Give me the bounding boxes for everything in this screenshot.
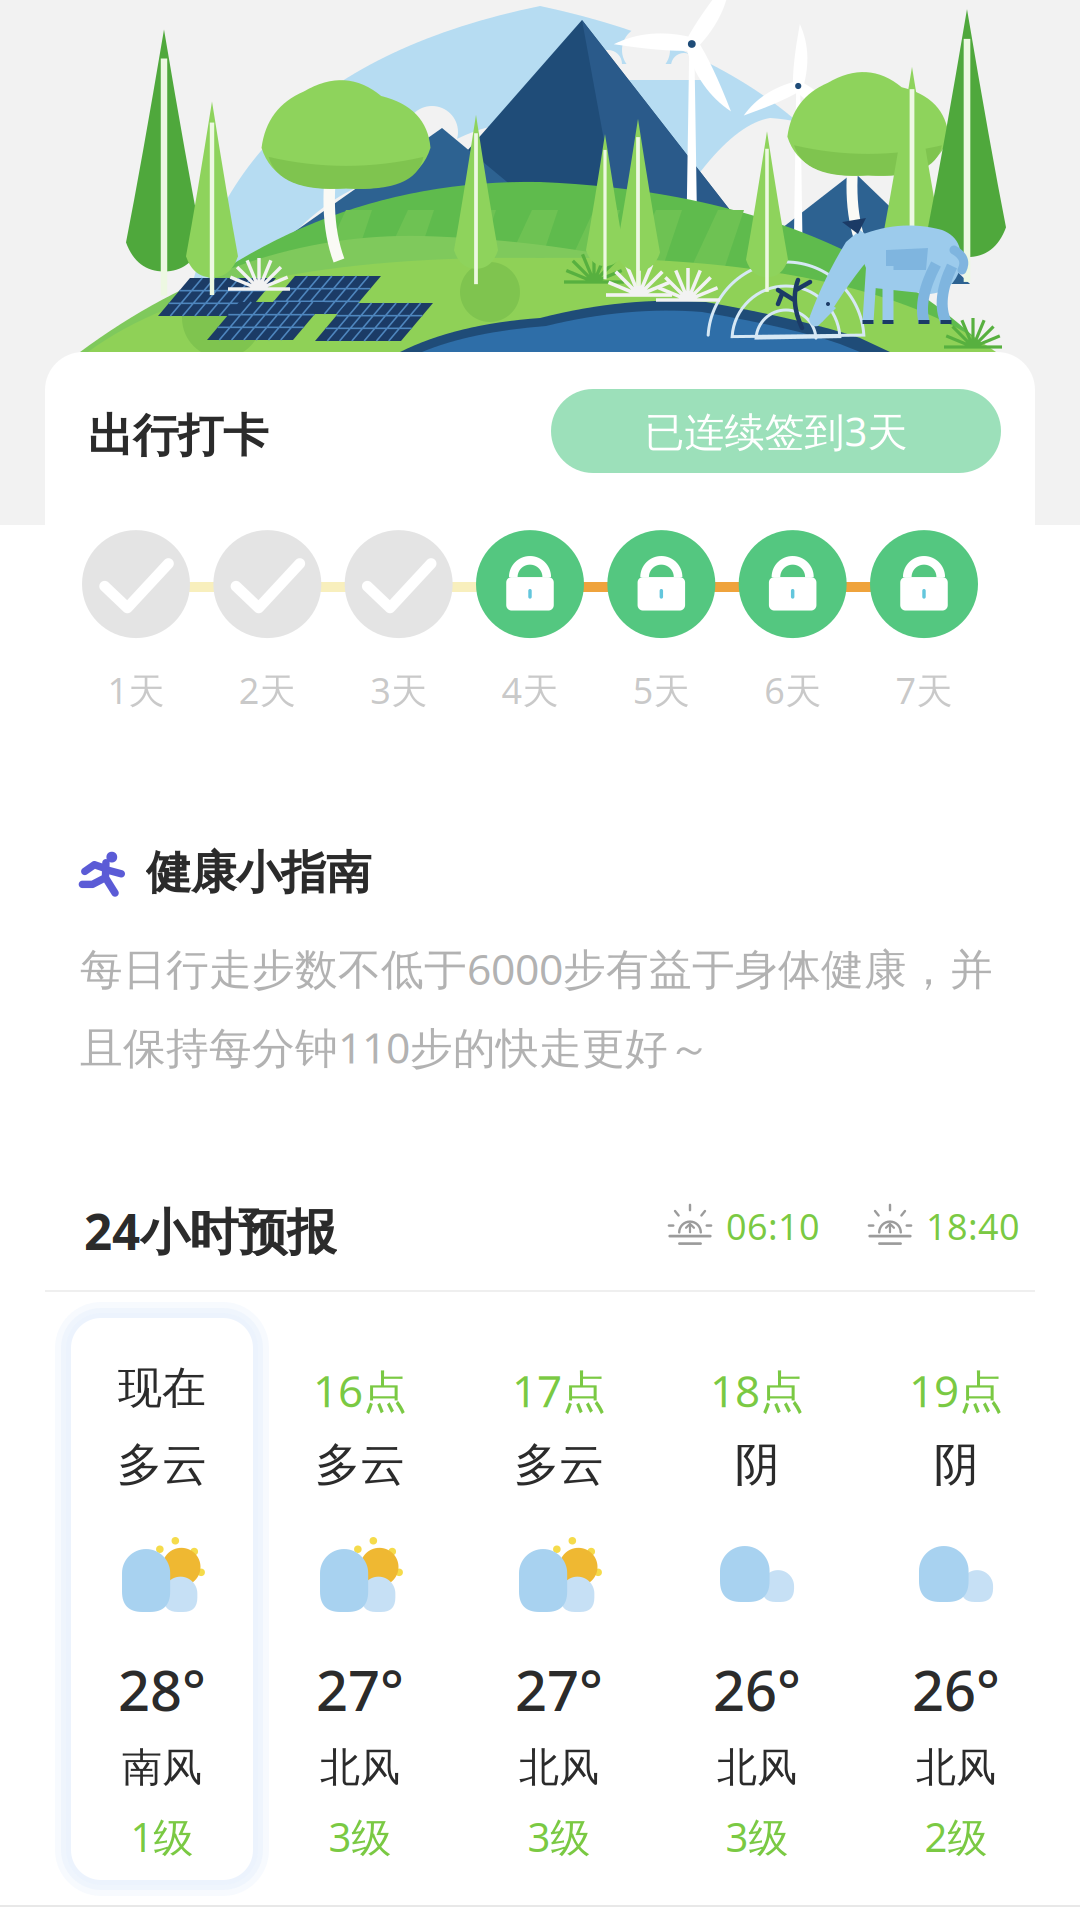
staticText: 北风 [320, 1743, 400, 1792]
staticText: 1级 [130, 1810, 193, 1863]
button[interactable]: 18点 [666, 1318, 848, 1880]
staticText: 16点 [313, 1361, 407, 1419]
staticText: 06:10 [726, 1202, 820, 1250]
staticText: 26° [713, 1652, 801, 1726]
button[interactable]: 7天 [870, 533, 978, 711]
button[interactable]: 4天 [476, 533, 584, 711]
staticText: 北风 [916, 1743, 996, 1792]
staticText: 17点 [512, 1361, 606, 1419]
staticText: 6天 [764, 666, 821, 714]
staticText: 26° [912, 1652, 1000, 1726]
staticText: 27° [316, 1652, 404, 1726]
staticText: 多云 [117, 1437, 207, 1493]
staticText: 健康小指南 [146, 845, 371, 901]
staticText: 5天 [633, 666, 690, 714]
staticText: 19点 [909, 1361, 1003, 1419]
staticText: 现在 [118, 1361, 206, 1415]
staticText: 多云 [315, 1437, 405, 1493]
staticText: 阴 [933, 1437, 978, 1493]
staticText: 阴 [734, 1437, 779, 1493]
staticText: 北风 [519, 1743, 599, 1792]
staticText: 18:40 [926, 1202, 1020, 1250]
staticText: 7天 [895, 666, 952, 714]
button[interactable]: 现在 [71, 1318, 253, 1880]
staticText: 每日行走步数不低于6000步有益于身体健康，并 [80, 940, 993, 997]
staticText: 南风 [122, 1743, 202, 1792]
staticText: 已连续签到3天 [644, 404, 907, 457]
staticText: 3天 [370, 666, 427, 714]
button[interactable]: 3天 [345, 533, 453, 711]
staticText: 4天 [501, 666, 558, 714]
button[interactable]: 已连续签到3天 [551, 389, 1001, 473]
staticText: 出行打卡 [88, 408, 268, 464]
button[interactable]: 17点 [468, 1318, 650, 1880]
staticText: 18点 [710, 1361, 804, 1419]
staticText: 2级 [924, 1810, 987, 1863]
staticText: 3级 [328, 1810, 391, 1863]
staticText: 北风 [717, 1743, 797, 1792]
staticText: 2天 [239, 666, 296, 714]
staticText: 3级 [527, 1810, 590, 1863]
button[interactable]: 5天 [607, 533, 715, 711]
button[interactable]: 2天 [213, 533, 321, 711]
staticText: 27° [515, 1652, 603, 1726]
staticText: 且保持每分钟110步的快走更好～ [80, 1019, 711, 1075]
staticText: 3级 [725, 1810, 788, 1863]
button[interactable]: 1天 [82, 533, 190, 711]
button[interactable]: 6天 [739, 533, 847, 711]
button[interactable]: 19点 [865, 1318, 1047, 1880]
staticText: 1天 [107, 666, 164, 714]
button[interactable]: 16点 [269, 1318, 451, 1880]
staticText: 28° [118, 1652, 206, 1726]
staticText: 多云 [514, 1437, 604, 1493]
staticText: 24小时预报 [84, 1198, 336, 1263]
